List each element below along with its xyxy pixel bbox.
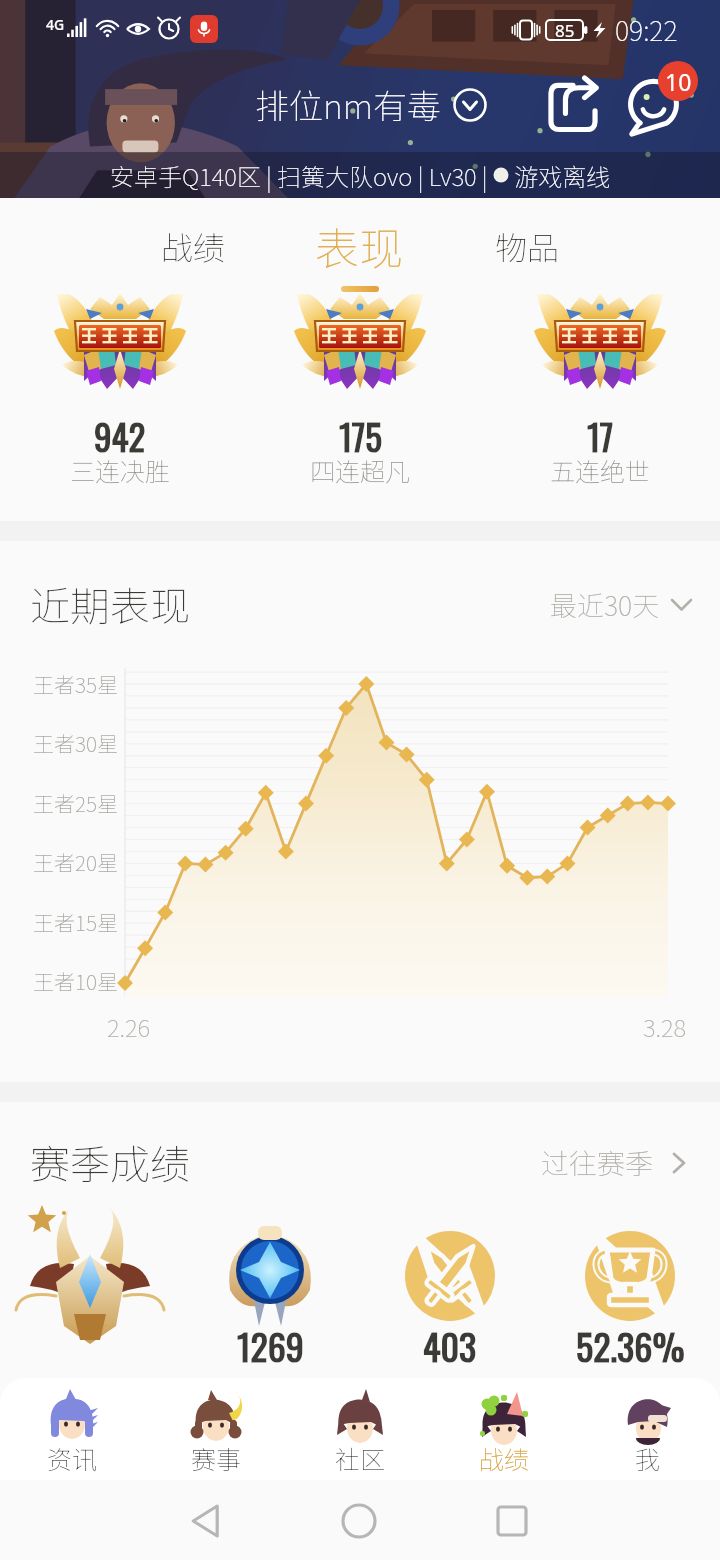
button[interactable]: 942	[0, 294, 240, 521]
button[interactable]: Share	[540, 71, 606, 137]
staticText: 4G	[46, 15, 65, 34]
staticText: 四连超凡	[310, 452, 411, 486]
staticText: 王者20星	[33, 847, 118, 877]
staticText: 最近30天	[550, 585, 660, 624]
staticText: 战绩	[479, 1440, 530, 1474]
button[interactable]: 战绩	[432, 1378, 576, 1480]
staticText: 过往赛季	[541, 1142, 654, 1183]
button[interactable]: Messages	[620, 61, 698, 139]
button[interactable]: 赛事	[144, 1378, 288, 1480]
button[interactable]: 最近30天	[550, 585, 692, 624]
staticText: 表现	[315, 214, 403, 278]
staticText: 近期表现	[30, 575, 190, 633]
staticText: 社区	[335, 1440, 386, 1474]
button[interactable]: Back	[174, 1489, 238, 1553]
staticText: 三连决胜	[70, 452, 171, 486]
button[interactable]: 我	[576, 1378, 720, 1480]
staticText: 王者25星	[33, 788, 118, 818]
button[interactable]: 52.36%	[540, 1102, 720, 1402]
button[interactable]: Recents	[480, 1489, 544, 1553]
staticText: 175	[339, 410, 382, 454]
staticText: 2.26	[107, 1009, 151, 1044]
staticText: 17	[587, 410, 614, 454]
button[interactable]: 17	[480, 294, 720, 521]
staticText: 物品	[495, 223, 560, 269]
staticText: 我	[635, 1440, 661, 1474]
staticText: 排位nm有毒	[255, 80, 441, 129]
staticText: 1269	[237, 1319, 304, 1363]
staticText: 赛季成绩	[30, 1133, 190, 1191]
staticText: 王者15星	[33, 907, 118, 937]
staticText: 85	[555, 19, 575, 42]
staticText: 战绩	[161, 223, 226, 269]
staticText: 五连绝世	[550, 452, 651, 486]
staticText: 52.36%	[576, 1319, 685, 1363]
staticText: 09:22	[615, 10, 678, 49]
staticText: 安卓手Q140区 | 扫簧大队ovo | Lv30 |	[110, 158, 493, 193]
button[interactable]: Home	[327, 1489, 391, 1553]
staticText: 资讯	[47, 1440, 98, 1474]
button[interactable]: 排位nm有毒	[255, 80, 487, 129]
staticText: 王者35星	[33, 669, 118, 699]
button[interactable]: 175	[240, 294, 480, 521]
button[interactable]: 过往赛季	[541, 1142, 692, 1183]
staticText: 王者30星	[33, 728, 118, 758]
button[interactable]: 社区	[288, 1378, 432, 1480]
button[interactable]	[0, 1102, 180, 1402]
staticText: 10	[665, 66, 692, 97]
button[interactable]: 物品	[479, 198, 575, 294]
staticText: 942	[94, 410, 146, 454]
button[interactable]: 资讯	[0, 1378, 144, 1480]
button[interactable]: 表现	[311, 198, 407, 294]
staticText: 403	[423, 1319, 477, 1363]
button[interactable]: 403	[360, 1102, 540, 1402]
button[interactable]: 1269	[180, 1102, 360, 1402]
button[interactable]: 战绩	[145, 198, 241, 294]
staticText: 3.28	[643, 1009, 687, 1044]
staticText: 王者10星	[33, 966, 118, 996]
staticText: 赛事	[191, 1440, 242, 1474]
staticText: 游戏离线	[509, 158, 611, 193]
